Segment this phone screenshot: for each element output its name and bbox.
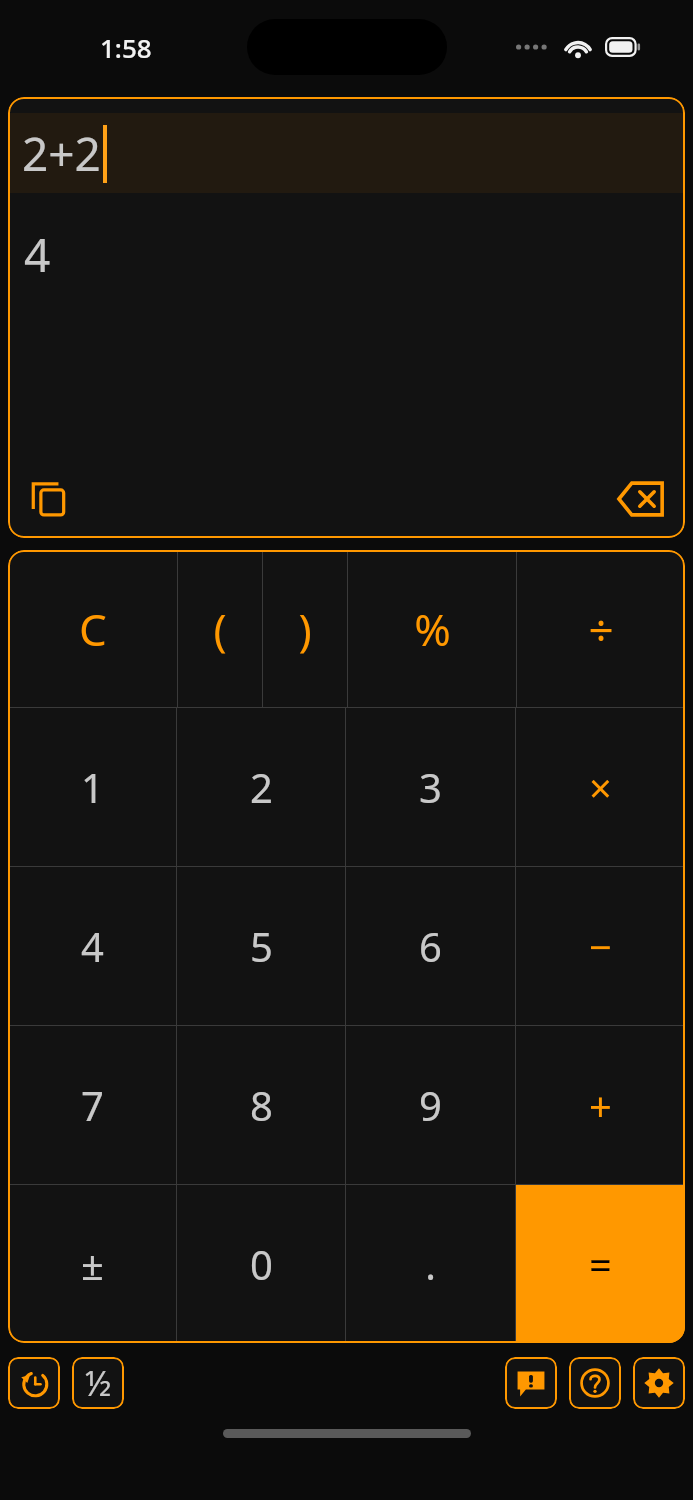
staticText: −: [589, 919, 612, 973]
button[interactable]: Fraction: [72, 1357, 124, 1409]
button[interactable]: ×: [516, 708, 685, 866]
button[interactable]: %: [348, 550, 516, 707]
staticText: %: [414, 599, 451, 659]
button[interactable]: 0: [177, 1185, 345, 1343]
button[interactable]: Backspace: [613, 471, 669, 527]
button[interactable]: +: [516, 1026, 685, 1184]
staticText: +: [589, 1078, 612, 1132]
staticText: 3: [419, 760, 442, 814]
staticText: 8: [250, 1078, 273, 1132]
button[interactable]: Help: [569, 1357, 621, 1409]
button[interactable]: 1: [8, 708, 176, 866]
button[interactable]: 3: [346, 708, 515, 866]
staticText: 7: [81, 1078, 104, 1132]
staticText: 5: [250, 919, 273, 973]
staticText: ±: [81, 1237, 104, 1291]
button[interactable]: 2+2: [8, 113, 685, 193]
button[interactable]: 6: [346, 867, 515, 1025]
staticText: =: [589, 1237, 612, 1291]
button[interactable]: 9: [346, 1026, 515, 1184]
staticText: ½: [85, 1360, 112, 1406]
button[interactable]: −: [516, 867, 685, 1025]
button[interactable]: ): [263, 550, 347, 707]
staticText: 1: [81, 760, 104, 814]
button[interactable]: 8: [177, 1026, 345, 1184]
staticText: ÷: [588, 599, 614, 659]
button[interactable]: Copy: [24, 473, 76, 525]
button[interactable]: Settings: [633, 1357, 685, 1409]
staticText: (: [213, 599, 227, 659]
staticText: 0: [250, 1237, 273, 1291]
button[interactable]: 5: [177, 867, 345, 1025]
button[interactable]: C: [8, 550, 177, 707]
staticText: 4: [81, 919, 104, 973]
staticText: ×: [589, 760, 612, 814]
button[interactable]: .: [346, 1185, 515, 1343]
staticText: .: [425, 1237, 436, 1291]
button[interactable]: 4: [8, 193, 685, 460]
button[interactable]: 7: [8, 1026, 176, 1184]
staticText: 4: [24, 223, 51, 286]
staticText: ): [298, 599, 312, 659]
button[interactable]: 4: [8, 867, 176, 1025]
staticText: 1:58: [100, 30, 152, 65]
button[interactable]: Feedback: [505, 1357, 557, 1409]
staticText: 6: [419, 919, 442, 973]
button[interactable]: (: [178, 550, 262, 707]
button[interactable]: ÷: [517, 550, 685, 707]
staticText: C: [79, 599, 107, 659]
staticText: 2+2: [22, 122, 101, 185]
button[interactable]: ±: [8, 1185, 176, 1343]
button[interactable]: 2: [177, 708, 345, 866]
staticText: 9: [419, 1078, 442, 1132]
staticText: 2: [250, 760, 273, 814]
button[interactable]: History: [8, 1357, 60, 1409]
button[interactable]: =: [516, 1185, 685, 1343]
